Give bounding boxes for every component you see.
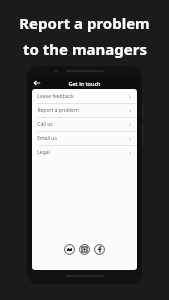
staticText: Get in touch (68, 80, 101, 87)
button[interactable]: Call us (32, 118, 137, 131)
staticText: Report a problem (19, 13, 150, 33)
staticText: Report a problem (37, 107, 79, 114)
staticText: Leave feedback (37, 93, 74, 100)
button[interactable]: Twitter (64, 244, 75, 255)
button[interactable]: Leave feedback (32, 90, 137, 103)
button[interactable]: Legal (32, 146, 137, 159)
staticText: to the managers (23, 39, 147, 59)
button[interactable]: Instagram (79, 244, 90, 255)
button[interactable]: Back (32, 78, 42, 88)
staticText: Call us (37, 121, 53, 128)
staticText: Email us (37, 135, 57, 142)
button[interactable]: Facebook (94, 244, 105, 255)
button[interactable]: Report a problem (32, 104, 137, 117)
button[interactable]: Email us (32, 132, 137, 145)
staticText: Legal (37, 149, 50, 156)
